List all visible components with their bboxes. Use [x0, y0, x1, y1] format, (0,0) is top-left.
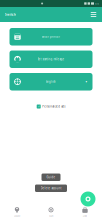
button[interactable]: ✓	[37, 103, 65, 109]
staticText: 9:41	[95, 2, 99, 5]
button[interactable]: Delete account	[35, 184, 67, 192]
staticText: ▾	[85, 80, 87, 84]
staticText: Enter printer	[42, 35, 60, 38]
button[interactable]: Add	[80, 191, 96, 207]
staticText: Delete account	[40, 186, 61, 190]
button[interactable]: Locate	[0, 205, 34, 219]
staticText: Set starting mileage	[37, 57, 64, 61]
button[interactable]: Set starting mileage	[9, 50, 92, 68]
button[interactable]: Scan	[34, 205, 68, 219]
staticText: English	[46, 80, 56, 83]
staticText: Scan	[49, 214, 53, 217]
button[interactable]: Enter printer	[9, 28, 92, 45]
staticText: Jobs	[83, 214, 87, 217]
button[interactable]: English	[9, 73, 92, 90]
button[interactable]: Menu	[88, 7, 99, 21]
button[interactable]: Guide	[41, 173, 60, 181]
staticText: Locate	[14, 214, 20, 217]
staticText: Personalized ads	[42, 105, 65, 108]
staticText: Switch	[5, 12, 16, 16]
button[interactable]: Jobs	[68, 205, 102, 219]
staticText: Guide	[46, 175, 55, 179]
staticText: ✓	[38, 105, 40, 108]
